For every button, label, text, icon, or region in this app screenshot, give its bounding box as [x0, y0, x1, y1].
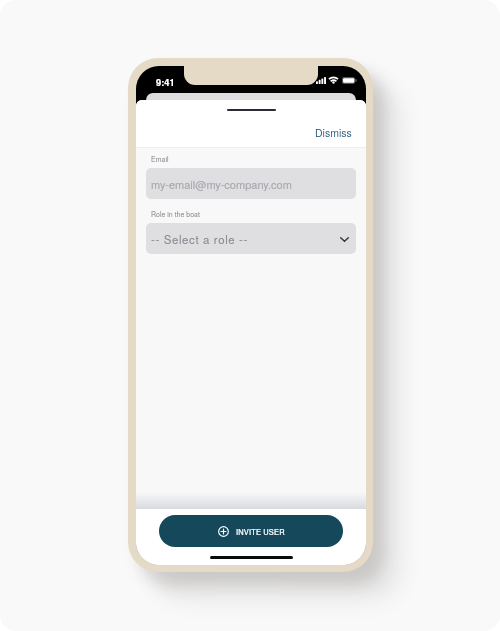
button[interactable]: INVITE USER: [159, 515, 343, 547]
staticText: 9:41: [156, 76, 175, 89]
button[interactable]: Dismiss: [301, 122, 366, 143]
staticText: Dismiss: [315, 125, 352, 140]
staticText: my-email@my-company.com: [151, 176, 292, 192]
staticText: Role in the boat: [151, 209, 200, 219]
staticText: Email: [151, 154, 169, 164]
staticText: -- Select a role --: [151, 231, 248, 247]
button[interactable]: -- Select a role --: [146, 223, 356, 254]
staticText: INVITE USER: [236, 526, 285, 537]
button[interactable]: my-email@my-company.com: [146, 168, 356, 199]
